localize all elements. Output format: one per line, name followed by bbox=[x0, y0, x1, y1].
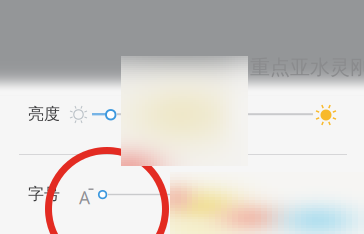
button[interactable]: 字号 bbox=[28, 173, 364, 215]
staticText: 字号 bbox=[28, 184, 60, 204]
staticText: 重点亚水灵刚 bbox=[250, 55, 364, 80]
staticText: A bbox=[79, 186, 90, 209]
button[interactable]: 亮度 bbox=[28, 93, 364, 135]
staticText: 亮度 bbox=[28, 104, 60, 124]
